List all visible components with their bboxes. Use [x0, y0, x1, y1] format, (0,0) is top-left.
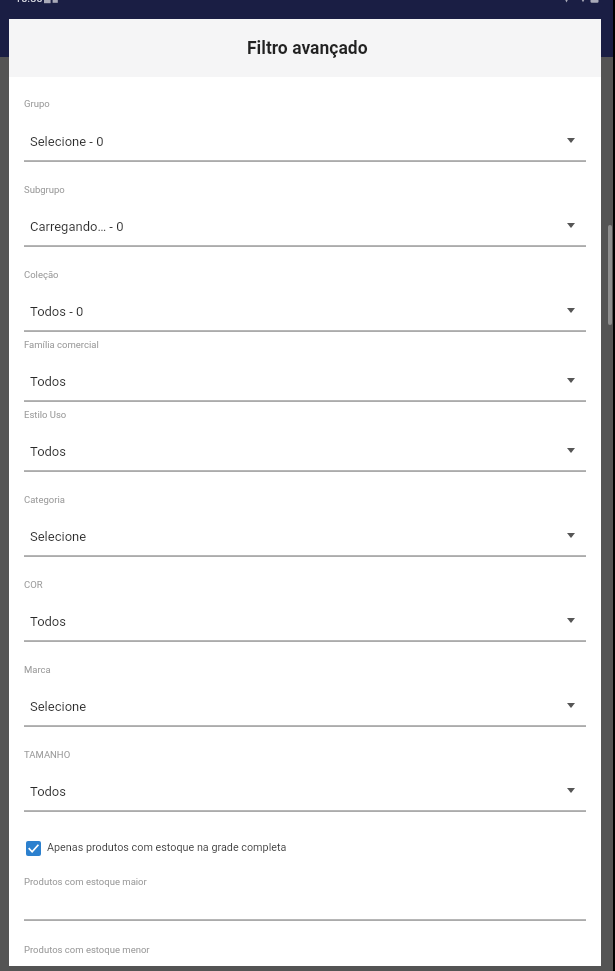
staticText: Coleção	[24, 269, 59, 280]
staticText: Todos	[30, 444, 66, 459]
staticText: Grupo	[24, 98, 50, 109]
button[interactable]: Categoria	[9, 472, 601, 557]
button[interactable]: COR	[9, 557, 601, 642]
staticText: Selecione - 0	[30, 134, 104, 149]
staticText: Selecione	[30, 699, 87, 714]
staticText: Produtos com estoque maior	[24, 876, 147, 887]
staticText: 10:56	[15, 0, 43, 5]
button[interactable]: Estilo Uso	[9, 402, 601, 472]
other: Abrir lista Estilo Uso	[567, 448, 575, 453]
other: Abrir lista COR	[567, 618, 575, 623]
other: Abrir lista Coleção	[567, 308, 575, 313]
staticText: Todos	[30, 784, 66, 799]
other: Abrir lista Família comercial	[567, 378, 575, 383]
staticText: Produtos com estoque menor	[24, 944, 150, 955]
staticText: Filtro avançado	[247, 38, 368, 59]
staticText: Todos	[30, 614, 66, 629]
button[interactable]: Produtos com estoque menor	[9, 921, 601, 966]
other: Abrir lista TAMANHO	[567, 788, 575, 793]
other: Abrir lista Marca	[567, 703, 575, 708]
staticText: Categoria	[24, 494, 65, 505]
staticText: Todos	[30, 374, 66, 389]
other: Abrir lista Categoria	[567, 533, 575, 538]
button[interactable]: TAMANHO	[9, 727, 601, 812]
staticText: COR	[24, 579, 43, 590]
staticText: Marca	[24, 664, 51, 675]
button[interactable]: Marca	[9, 642, 601, 727]
staticText: Apenas produtos com estoque na grade com…	[47, 841, 287, 854]
staticText: Todos - 0	[30, 304, 84, 319]
button[interactable]: Subgrupo	[9, 162, 601, 247]
staticText: Carregando… - 0	[30, 219, 124, 234]
button[interactable]: Coleção	[9, 247, 601, 332]
staticText: Família comercial	[24, 339, 99, 350]
button[interactable]: Produtos com estoque maior	[9, 866, 601, 921]
staticText: TAMANHO	[24, 749, 71, 760]
other: Abrir lista Subgrupo	[567, 223, 575, 228]
other: Abrir lista Grupo	[567, 138, 575, 143]
staticText: Selecione	[30, 529, 87, 544]
button[interactable]: Família comercial	[9, 332, 601, 402]
button[interactable]: Apenas produtos com estoque na grade com…	[9, 812, 601, 866]
button[interactable]: Grupo	[9, 77, 601, 162]
staticText: Subgrupo	[24, 184, 65, 195]
staticText: Estilo Uso	[24, 409, 67, 420]
